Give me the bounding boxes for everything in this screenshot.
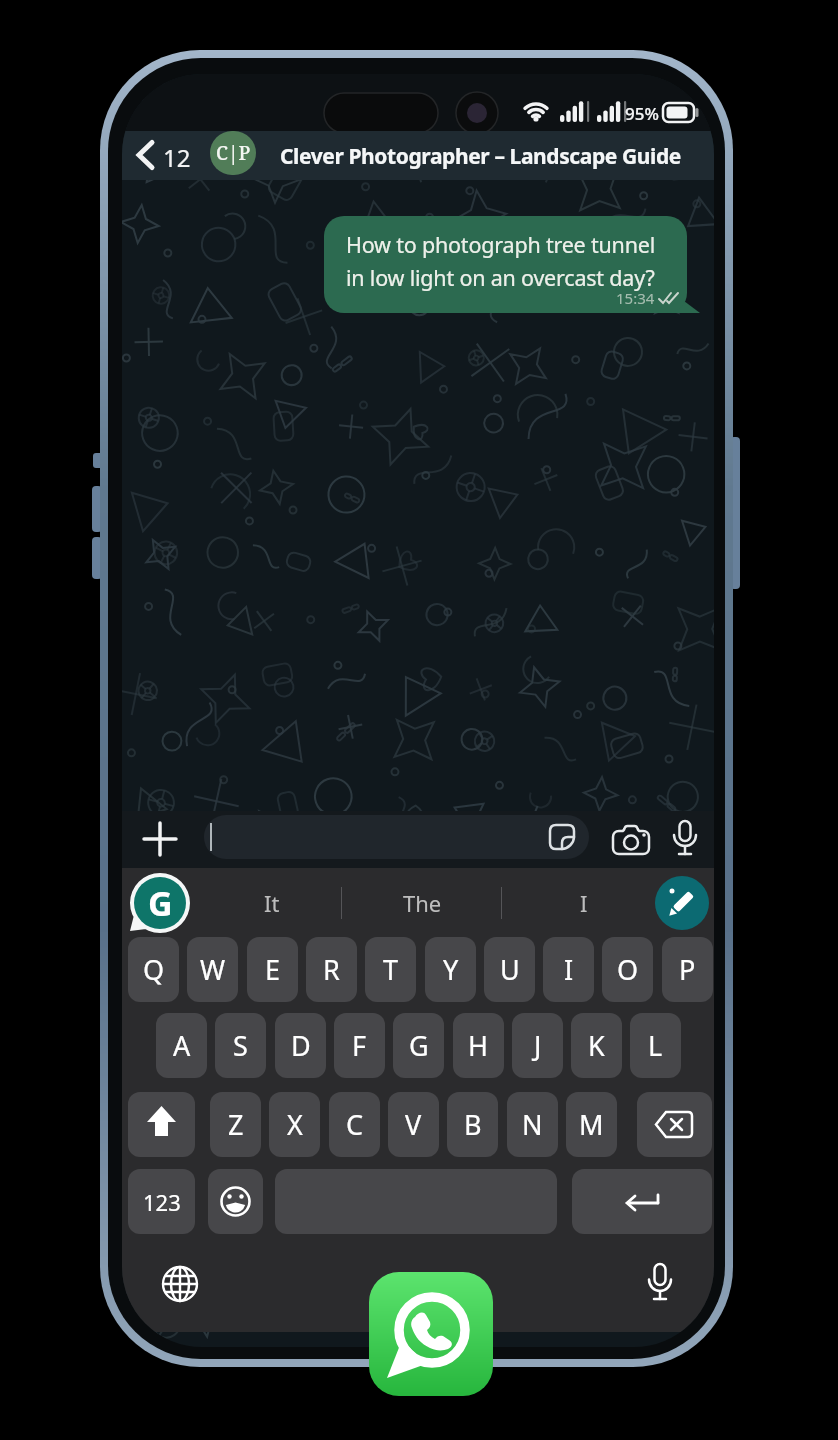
staticText: 15:34: [616, 288, 655, 308]
button[interactable]: C: [329, 1092, 380, 1157]
staticText: X: [287, 1106, 303, 1143]
staticText: M: [579, 1106, 604, 1143]
staticText: G: [148, 880, 173, 926]
button[interactable]: C|P: [209, 131, 257, 175]
staticText: A: [173, 1027, 191, 1064]
button[interactable]: It: [212, 871, 332, 935]
button[interactable]: F: [334, 1013, 385, 1078]
button[interactable]: L: [630, 1013, 681, 1078]
button[interactable]: Z: [210, 1092, 261, 1157]
button[interactable]: 123: [128, 1169, 195, 1234]
button[interactable]: M: [566, 1092, 617, 1157]
button[interactable]: P: [662, 937, 713, 1002]
button[interactable]: V: [388, 1092, 439, 1157]
staticText: R: [323, 951, 340, 988]
staticText: Clever Photographer – Landscape Guide: [280, 142, 681, 171]
staticText: W: [200, 951, 226, 988]
staticText: F: [352, 1027, 367, 1064]
staticText: N: [522, 1106, 543, 1143]
staticText: D: [291, 1027, 311, 1064]
button[interactable]: [369, 1272, 493, 1396]
button[interactable]: R: [306, 937, 357, 1002]
button[interactable]: T: [365, 937, 416, 1002]
staticText: Q: [143, 951, 165, 988]
button[interactable]: K: [571, 1013, 622, 1078]
button[interactable]: D: [275, 1013, 326, 1078]
button[interactable]: The: [362, 871, 482, 935]
button[interactable]: U: [484, 937, 535, 1002]
staticText: Y: [443, 951, 459, 988]
staticText: P: [679, 951, 696, 988]
button[interactable]: G: [393, 1013, 444, 1078]
staticText: J: [534, 1027, 542, 1064]
button[interactable]: [611, 824, 651, 856]
button[interactable]: I: [543, 937, 594, 1002]
staticText: 12: [163, 141, 191, 174]
staticText: B: [464, 1106, 482, 1143]
button[interactable]: S: [215, 1013, 266, 1078]
button[interactable]: H: [453, 1013, 504, 1078]
staticText: H: [468, 1027, 489, 1064]
staticText: C|P: [216, 140, 251, 166]
button[interactable]: G: [128, 871, 192, 935]
button[interactable]: [161, 1265, 199, 1303]
button[interactable]: [671, 820, 699, 860]
button[interactable]: E: [247, 937, 298, 1002]
button[interactable]: [655, 876, 709, 930]
staticText: 123: [143, 1187, 181, 1217]
staticText: C: [346, 1106, 364, 1143]
button[interactable]: [204, 815, 589, 859]
button[interactable]: I: [524, 871, 644, 935]
staticText: E: [265, 951, 281, 988]
staticText: The: [403, 888, 442, 918]
staticText: I: [580, 888, 588, 918]
staticText: Z: [228, 1106, 244, 1143]
button[interactable]: [208, 1169, 263, 1234]
button[interactable]: A: [156, 1013, 207, 1078]
button[interactable]: J: [512, 1013, 563, 1078]
button[interactable]: B: [447, 1092, 498, 1157]
button[interactable]: Q: [128, 937, 179, 1002]
button[interactable]: O: [602, 937, 653, 1002]
button[interactable]: X: [269, 1092, 320, 1157]
staticText: K: [588, 1027, 605, 1064]
staticText: V: [405, 1106, 422, 1143]
staticText: O: [617, 951, 639, 988]
staticText: 95%: [625, 102, 659, 125]
button[interactable]: W: [187, 937, 238, 1002]
staticText: It: [264, 888, 280, 918]
staticText: I: [564, 951, 574, 988]
staticText: in low light on an overcast day?: [346, 263, 655, 292]
button[interactable]: [142, 821, 178, 857]
button[interactable]: [122, 131, 714, 180]
staticText: G: [409, 1027, 429, 1064]
button[interactable]: [134, 141, 156, 169]
button[interactable]: [646, 1263, 674, 1305]
button[interactable]: [572, 1169, 712, 1234]
staticText: T: [383, 951, 399, 988]
staticText: L: [648, 1027, 663, 1064]
button[interactable]: [128, 1092, 195, 1157]
button[interactable]: [637, 1092, 712, 1157]
staticText: How to photograph tree tunnel: [346, 230, 656, 259]
button[interactable]: Y: [425, 937, 476, 1002]
staticText: S: [233, 1027, 248, 1064]
staticText: U: [500, 951, 520, 988]
button[interactable]: N: [507, 1092, 558, 1157]
